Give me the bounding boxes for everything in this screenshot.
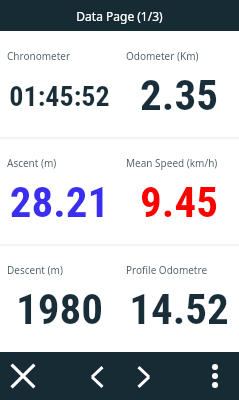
staticText: 1980 [0, 284, 119, 333]
button[interactable]: Odometer (Km) [119, 31, 239, 138]
staticText: 01:45:52 [0, 80, 119, 113]
button[interactable]: Chronometer [0, 31, 119, 138]
staticText: Chronometer [7, 49, 71, 63]
button[interactable]: Profile Odometre [119, 245, 239, 352]
button[interactable]: More options [193, 354, 237, 398]
button[interactable]: Next page [120, 353, 167, 400]
staticText: Descent (m) [7, 263, 63, 277]
staticText: Odometer (Km) [126, 49, 199, 63]
button[interactable]: Ascent (m) [0, 138, 119, 245]
button[interactable]: Descent (m) [0, 245, 119, 352]
staticText: Mean Speed (km/h) [126, 156, 218, 170]
staticText: 2.35 [119, 70, 239, 119]
staticText: Ascent (m) [7, 156, 57, 170]
button[interactable]: Close [1, 354, 45, 398]
button[interactable]: Mean Speed (km/h) [119, 138, 239, 245]
staticText: 28.21 [0, 177, 119, 226]
staticText: 14.52 [119, 284, 239, 333]
staticText: Data Page (1/3) [76, 8, 163, 24]
staticText: Profile Odometre [126, 263, 208, 277]
staticText: 9.45 [119, 177, 239, 226]
button[interactable]: Previous page [73, 353, 120, 400]
